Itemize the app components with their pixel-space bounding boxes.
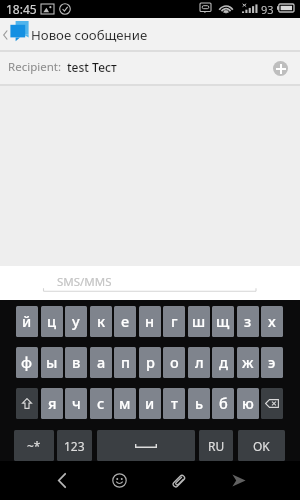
button[interactable]: п [114,347,136,378]
staticText: г [171,311,178,331]
button[interactable]: щ [212,306,234,337]
staticText: а [97,352,106,372]
staticText: ь [195,393,204,413]
staticText: test Тест [67,59,117,75]
button[interactable]: х [261,306,283,337]
staticText: ц [47,311,57,331]
button[interactable]: Emoji [103,461,136,500]
staticText: SMS/MMS [57,274,112,290]
button[interactable]: Back [45,461,78,500]
staticText: о [170,352,179,372]
staticText: с [97,393,105,413]
button[interactable]: ж [237,347,259,378]
staticText: ш [192,311,206,331]
button[interactable]: Attach [162,461,195,500]
button[interactable]: Send [222,461,255,500]
staticText: д [219,352,228,372]
button[interactable]: ч [65,388,87,419]
button[interactable]: и [139,388,161,419]
button[interactable]: у [65,306,87,337]
button[interactable]: с [90,388,112,419]
staticText: в [72,352,81,372]
staticText: ~* [27,438,41,454]
button[interactable]: е [114,306,136,337]
button[interactable]: ц [41,306,63,337]
staticText: 18:45 [6,1,37,17]
staticText: 123 [64,438,85,454]
staticText: е [121,311,130,331]
button[interactable]: м [114,388,136,419]
staticText: э [268,352,276,372]
button[interactable]: OK [238,430,285,461]
staticText: я [48,393,57,413]
staticText: р [146,352,155,372]
button[interactable]: ы [41,347,63,378]
button[interactable]: я [41,388,63,419]
button[interactable]: н [139,306,161,337]
button[interactable]: Add recipient [273,61,288,76]
button[interactable]: з [237,306,259,337]
button[interactable]: р [139,347,161,378]
staticText: т [171,393,178,413]
button[interactable]: ь [188,388,210,419]
staticText: й [22,311,32,331]
button[interactable]: д [212,347,234,378]
staticText: м [119,393,131,413]
button[interactable]: б [212,388,234,419]
staticText: ы [46,352,58,372]
staticText: ф [21,352,33,372]
button[interactable]: Backspace [261,388,283,419]
button[interactable]: 123 [57,430,92,461]
staticText: Recipient: [8,59,61,75]
button[interactable]: Back [0,18,11,52]
button[interactable]: г [163,306,185,337]
button[interactable]: ш [188,306,210,337]
staticText: Новое сообщение [31,26,148,44]
staticText: щ [216,311,230,331]
button[interactable]: к [90,306,112,337]
button[interactable]: т [163,388,185,419]
staticText: ю [242,393,254,413]
staticText: н [145,311,155,331]
staticText: п [121,352,130,372]
button[interactable]: ~* [14,430,54,461]
staticText: RU [208,438,225,454]
button[interactable]: о [163,347,185,378]
staticText: б [219,393,228,413]
staticText: 93 [261,2,274,17]
button[interactable]: RU [199,430,233,461]
button[interactable]: ю [237,388,259,419]
staticText: и [145,393,155,413]
staticText: к [97,311,106,331]
button[interactable]: й [16,306,38,337]
staticText: х [268,311,276,331]
staticText: у [72,311,80,331]
button[interactable]: Shift [16,388,38,419]
button[interactable]: Space [97,430,195,461]
button[interactable]: ф [16,347,38,378]
staticText: ч [72,393,81,413]
staticText: ж [242,352,254,372]
staticText: л [195,352,204,372]
button[interactable]: в [65,347,87,378]
staticText: з [244,311,252,331]
staticText: OK [253,438,270,454]
button[interactable]: э [261,347,283,378]
button[interactable]: л [188,347,210,378]
button[interactable]: а [90,347,112,378]
